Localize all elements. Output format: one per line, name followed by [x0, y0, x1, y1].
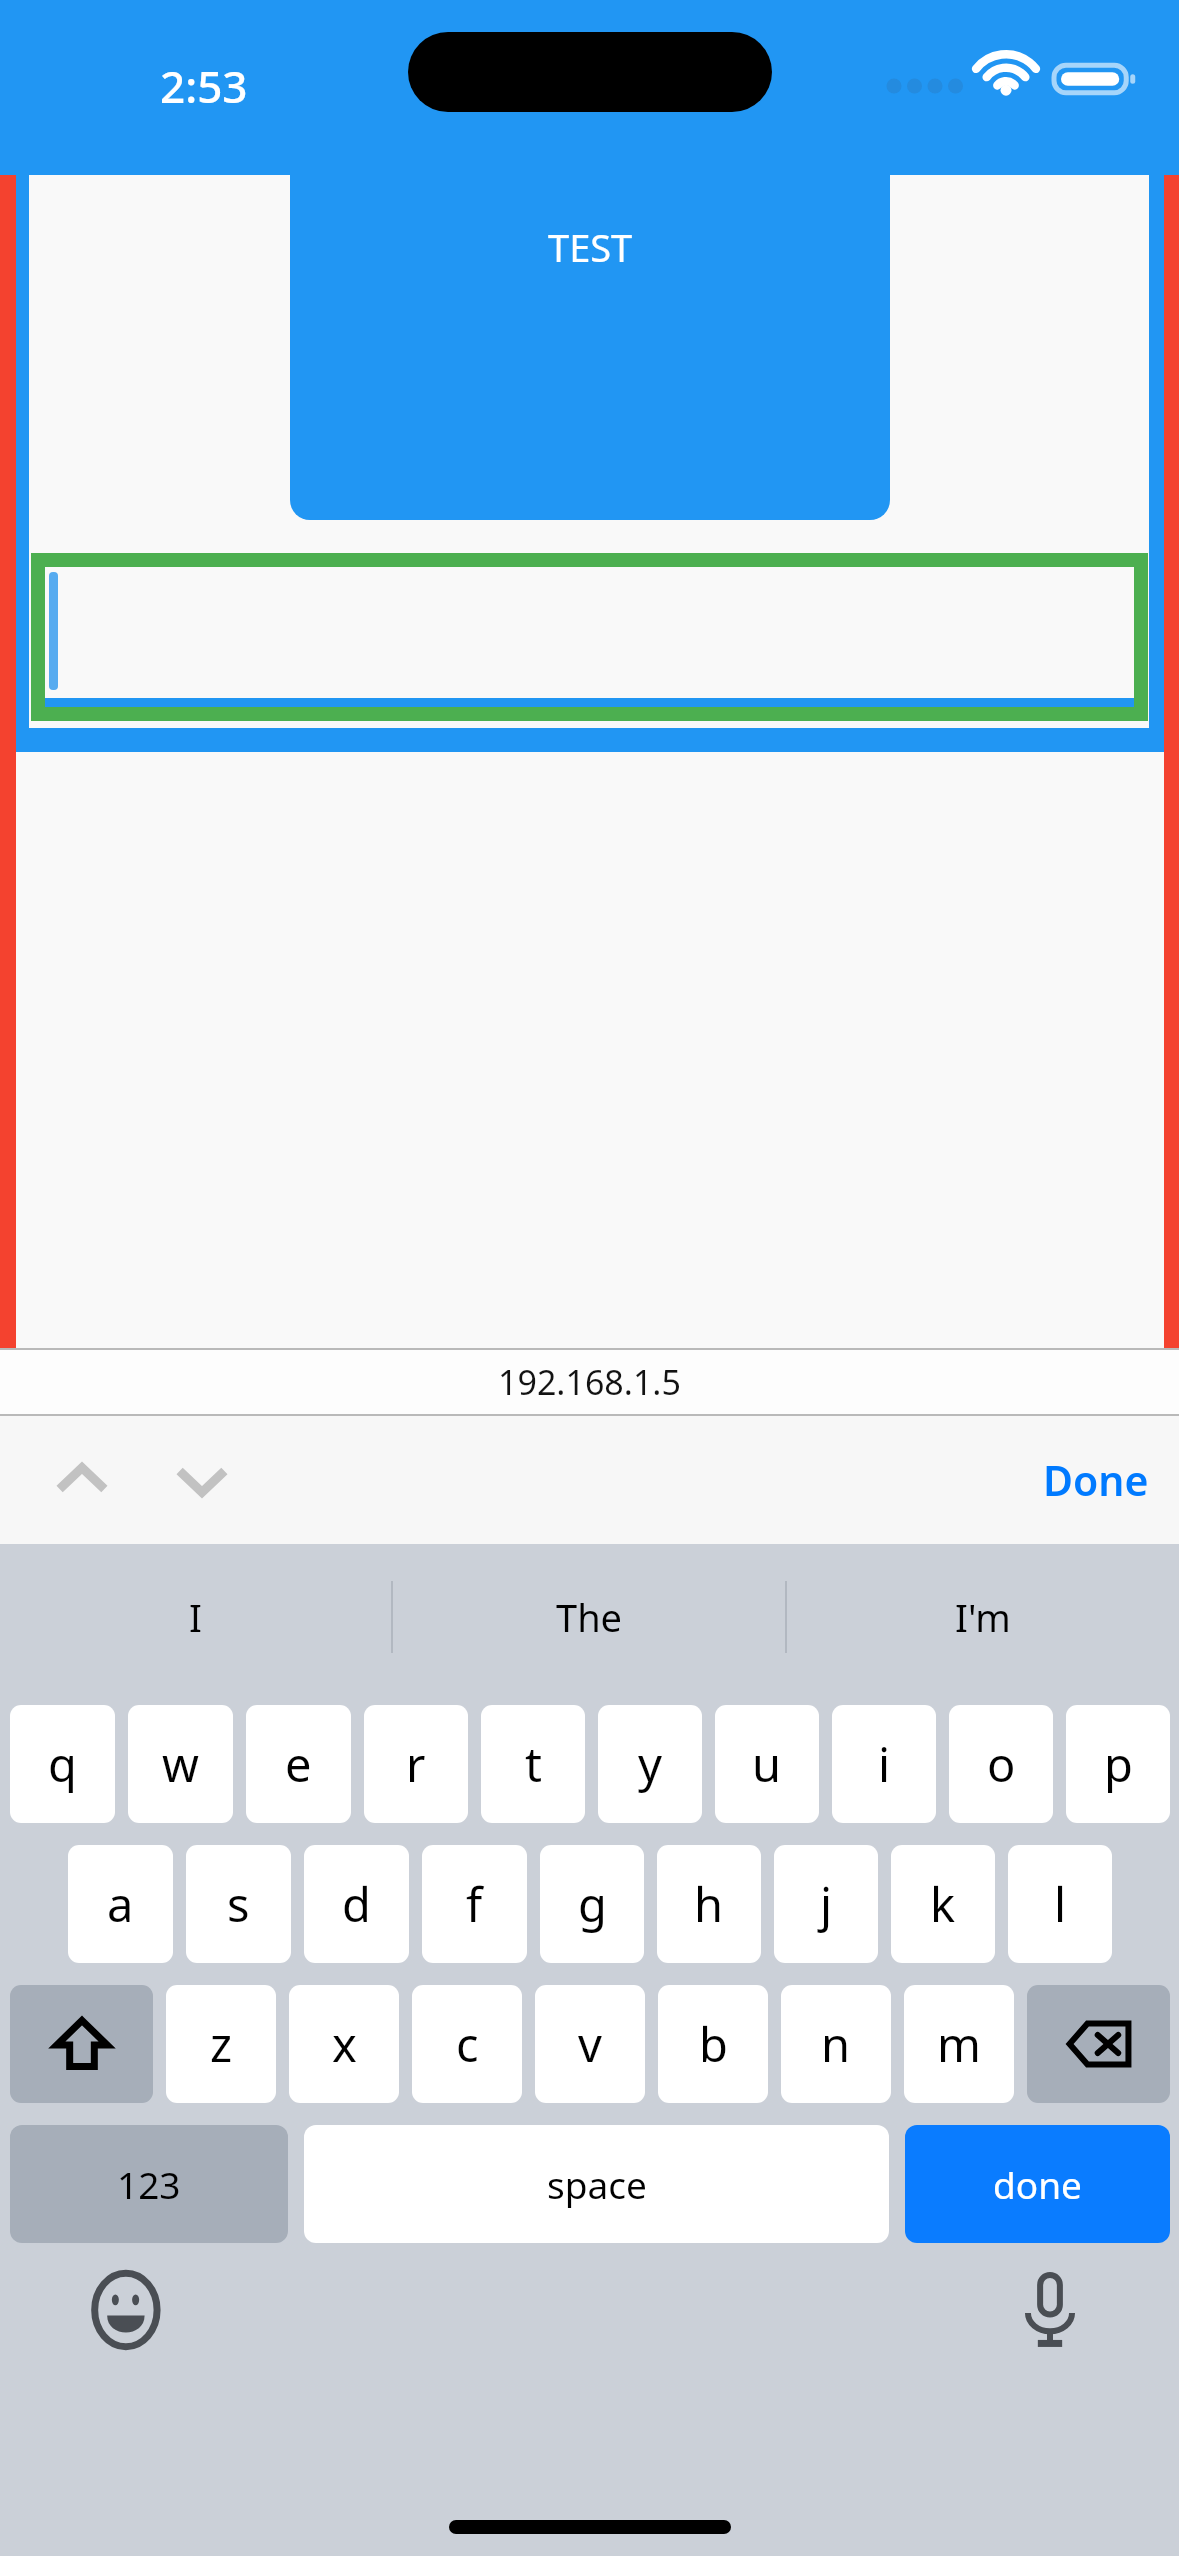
staticText: u: [752, 1732, 782, 1796]
staticText: y: [638, 1732, 662, 1796]
button[interactable]: o: [949, 1705, 1053, 1823]
staticText: e: [285, 1732, 312, 1796]
staticText: c: [456, 2012, 479, 2076]
staticText: g: [578, 1872, 607, 1936]
staticText: h: [694, 1872, 724, 1936]
staticText: k: [930, 1872, 956, 1936]
button[interactable]: I'm: [787, 1544, 1179, 1689]
staticText: x: [332, 2012, 357, 2076]
staticText: s: [227, 1872, 250, 1936]
button[interactable]: TEST: [290, 175, 890, 520]
button[interactable]: j: [774, 1845, 878, 1963]
button[interactable]: i: [832, 1705, 936, 1823]
staticText: I'm: [955, 1591, 1011, 1643]
button[interactable]: z: [166, 1985, 276, 2103]
button[interactable]: Emoji: [80, 2261, 178, 2359]
button[interactable]: f: [422, 1845, 527, 1963]
staticText: t: [525, 1732, 542, 1796]
button[interactable]: Shift: [10, 1985, 153, 2103]
button[interactable]: p: [1066, 1705, 1170, 1823]
staticText: m: [937, 2012, 981, 2076]
button[interactable]: s: [186, 1845, 291, 1963]
staticText: 2:53: [160, 56, 248, 116]
button[interactable]: l: [1008, 1845, 1112, 1963]
button[interactable]: k: [891, 1845, 995, 1963]
staticText: Done: [1043, 1452, 1149, 1508]
staticText: o: [987, 1732, 1016, 1796]
button[interactable]: g: [540, 1845, 644, 1963]
staticText: v: [578, 2012, 602, 2076]
button[interactable]: m: [904, 1985, 1014, 2103]
button[interactable]: b: [658, 1985, 768, 2103]
staticText: TEST: [548, 221, 633, 273]
staticText: done: [993, 2159, 1082, 2209]
button[interactable]: v: [535, 1985, 645, 2103]
button[interactable]: w: [128, 1705, 233, 1823]
button[interactable]: e: [246, 1705, 351, 1823]
button[interactable]: Previous field: [38, 1436, 126, 1524]
button[interactable]: t: [481, 1705, 585, 1823]
staticText: j: [820, 1872, 833, 1936]
button[interactable]: 192.168.1.5: [0, 1350, 1179, 1414]
staticText: The: [556, 1591, 623, 1643]
button[interactable]: Done: [1043, 1430, 1149, 1530]
staticText: I: [189, 1591, 202, 1643]
button[interactable]: Delete: [1027, 1985, 1170, 2103]
button[interactable]: Next field: [158, 1436, 246, 1524]
staticText: d: [342, 1872, 371, 1936]
staticText: 192.168.1.5: [498, 1359, 681, 1405]
button[interactable]: 123: [10, 2125, 288, 2243]
staticText: b: [699, 2012, 728, 2076]
button[interactable]: r: [364, 1705, 468, 1823]
button[interactable]: Dictation: [1001, 2261, 1099, 2359]
button[interactable]: a: [68, 1845, 173, 1963]
button[interactable]: I: [0, 1544, 391, 1689]
staticText: z: [210, 2012, 233, 2076]
button[interactable]: y: [598, 1705, 702, 1823]
staticText: r: [406, 1732, 426, 1796]
staticText: i: [878, 1732, 891, 1796]
button[interactable]: u: [715, 1705, 819, 1823]
button[interactable]: The: [393, 1544, 785, 1689]
button[interactable]: n: [781, 1985, 891, 2103]
button[interactable]: [31, 553, 1148, 721]
button[interactable]: d: [304, 1845, 409, 1963]
button[interactable]: x: [289, 1985, 399, 2103]
staticText: p: [1104, 1732, 1133, 1796]
staticText: 123: [117, 2159, 181, 2209]
staticText: a: [107, 1872, 134, 1936]
button[interactable]: space: [304, 2125, 889, 2243]
staticText: w: [162, 1732, 199, 1796]
button[interactable]: c: [412, 1985, 522, 2103]
staticText: l: [1054, 1872, 1067, 1936]
staticText: q: [48, 1732, 77, 1796]
staticText: n: [821, 2012, 851, 2076]
staticText: f: [466, 1872, 483, 1936]
staticText: space: [547, 2159, 647, 2209]
button[interactable]: done: [905, 2125, 1170, 2243]
button[interactable]: h: [657, 1845, 761, 1963]
button[interactable]: q: [10, 1705, 115, 1823]
